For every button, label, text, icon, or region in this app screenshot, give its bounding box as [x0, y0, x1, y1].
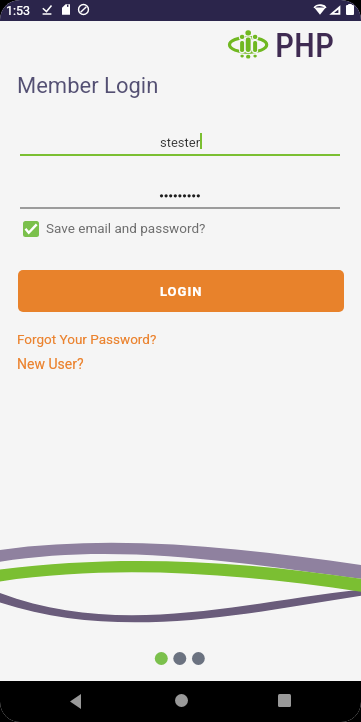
staticText: PHP: [275, 25, 335, 65]
staticText: Forgot Your Password?: [17, 331, 157, 347]
button[interactable]: LOGIN: [18, 270, 344, 312]
staticText: LOGIN: [160, 284, 203, 299]
staticText: New User?: [17, 356, 84, 372]
button[interactable]: Forgot Your Password?: [17, 331, 157, 347]
staticText: Member Login: [17, 73, 159, 99]
button[interactable]: Back: [61, 687, 89, 715]
staticText: Save email and password?: [46, 220, 206, 236]
button[interactable]: Home: [168, 687, 194, 713]
button[interactable]: [20, 186, 340, 204]
staticText: stester: [160, 135, 201, 150]
button[interactable]: stester: [20, 131, 340, 153]
button[interactable]: New User?: [17, 356, 84, 372]
button[interactable]: Recent apps: [271, 687, 298, 714]
staticText: 1:53: [6, 3, 31, 18]
button[interactable]: Save email and password?: [23, 218, 199, 238]
